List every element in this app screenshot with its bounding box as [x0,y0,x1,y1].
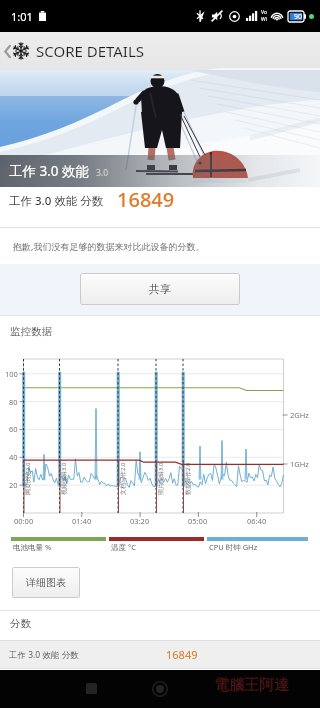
staticText: 照片编辑3.0 [157,462,165,495]
staticText: 20 [9,480,18,490]
staticText: 40 [9,452,18,462]
staticText: Vo [261,9,267,16]
staticText: 16849 [166,647,198,662]
staticText: 3.0 [96,167,109,179]
staticText: 1:01 [11,9,33,24]
staticText: 90 [294,12,303,22]
staticText: 抱歉,我们没有足够的数据来对比此设备的分数。 [13,240,205,252]
staticText: 详细图表 [26,576,66,589]
staticText: 工作 3.0 效能 [9,162,90,180]
staticText: 06:40 [247,516,267,526]
staticText: 分数 [10,617,31,630]
button[interactable]: Home [148,677,171,700]
staticText: CPU 时钟 GHz [209,542,258,552]
staticText: 100 [5,369,18,379]
button[interactable]: 工作 3.0 效能 分数 [0,641,320,668]
staticText: 01:40 [72,516,92,526]
button[interactable]: 详细图表 [12,567,80,598]
staticText: 03:20 [130,516,150,526]
staticText: 视频编辑3.0 [60,462,68,495]
button[interactable]: Back [0,41,145,61]
button[interactable]: Recents [80,677,102,699]
staticText: 数据操作2.0 [184,462,192,495]
staticText: 80 [9,397,18,407]
staticText: 2GHz [290,410,309,420]
staticText: 文档写作2.0 [119,462,127,495]
staticText: 电池电量 % [13,542,52,552]
staticText: 网页浏览2.0 [24,462,32,495]
staticText: 電腦王阿達 [214,676,289,695]
staticText: 00:00 [14,516,34,526]
button[interactable]: 共享 [80,273,240,305]
staticText: 共享 [149,282,171,296]
staticText: 16849 [117,186,175,213]
staticText: 60 [9,424,18,434]
staticText: 1GHz [290,459,309,469]
staticText: 监控数据 [10,325,52,338]
staticText: SCORE DETAILS [36,41,145,61]
staticText: 05:00 [188,516,208,526]
staticText: 温度 °C [111,542,136,552]
staticText: Wi [261,16,267,23]
staticText: 工作 3.0 效能 分数 [9,193,104,209]
staticText: 工作 3.0 效能 分数 [9,649,79,661]
